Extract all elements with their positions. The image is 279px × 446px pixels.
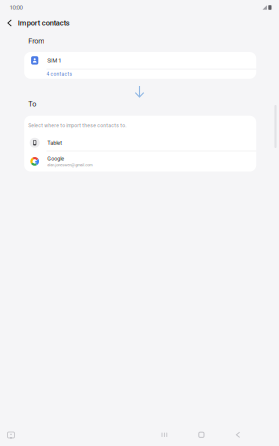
staticText: 10:00 (9, 4, 22, 11)
staticText: From (28, 37, 44, 45)
button[interactable]: Screenshot (3, 428, 19, 442)
staticText: Select where to import these contacts to… (28, 123, 126, 128)
button[interactable]: Home (193, 428, 209, 442)
staticText: SIM 1 (47, 57, 61, 64)
button[interactable]: Back (230, 428, 246, 442)
staticText: Import contacts (18, 19, 70, 27)
button[interactable]: Back (3, 14, 17, 31)
button[interactable]: Google (24, 151, 256, 171)
staticText: To (28, 100, 36, 108)
staticText: Google (47, 156, 64, 162)
staticText: Tablet (47, 139, 62, 146)
button[interactable]: Recent apps (156, 428, 172, 442)
button[interactable]: SIM 1 (24, 52, 256, 79)
staticText: alan.joneswen@gmail.com (47, 162, 92, 167)
staticText: 4 contacts (46, 71, 71, 77)
button[interactable]: Tablet (24, 135, 256, 151)
